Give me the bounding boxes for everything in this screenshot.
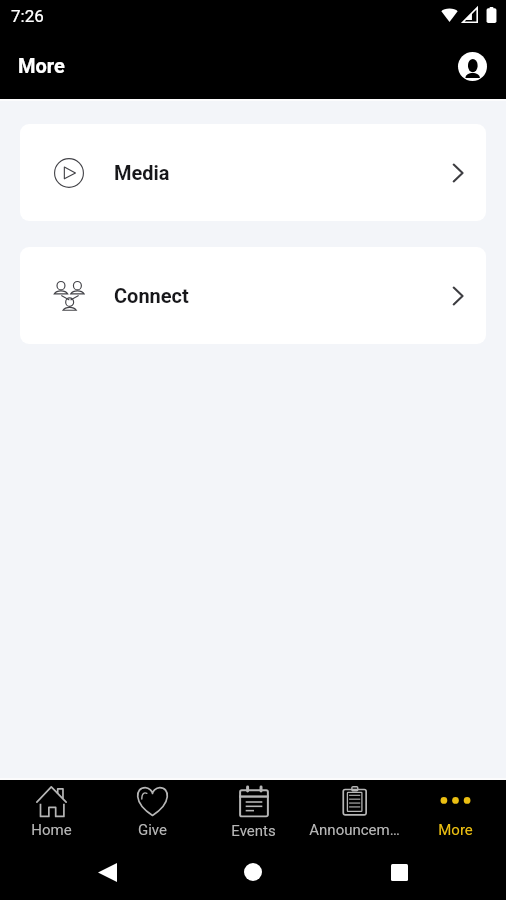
staticText: More	[18, 54, 65, 77]
button[interactable]: Home	[0, 786, 102, 839]
button[interactable]: Events	[203, 786, 304, 840]
button[interactable]: Connect	[20, 247, 486, 344]
button[interactable]: More	[405, 786, 506, 839]
staticText: 7:26	[11, 6, 44, 26]
button[interactable]: Recent apps	[379, 852, 419, 892]
staticText: Events	[231, 822, 276, 840]
staticText: Give	[138, 821, 167, 839]
button[interactable]: Back	[87, 852, 127, 892]
button[interactable]: Home	[233, 852, 273, 892]
staticText: Connect	[114, 284, 189, 307]
staticText: Media	[114, 161, 170, 184]
button[interactable]: Announcem…	[304, 786, 405, 839]
button[interactable]: Media	[20, 124, 486, 221]
button[interactable]: Give	[102, 786, 203, 839]
staticText: More	[438, 821, 473, 839]
button[interactable]: Account	[452, 46, 492, 86]
staticText: Announcem…	[309, 821, 400, 839]
staticText: Home	[31, 821, 72, 839]
